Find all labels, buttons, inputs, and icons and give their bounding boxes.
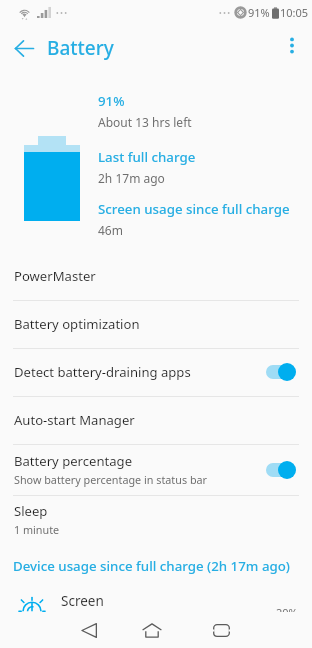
button[interactable]: Recent apps (205, 614, 237, 646)
button[interactable]: Screen (0, 587, 312, 615)
button[interactable]: Sleep (0, 495, 312, 543)
button[interactable]: Auto-start Manager (0, 396, 312, 444)
button[interactable]: Detect battery-draining apps (0, 348, 312, 396)
button[interactable]: PowerMaster (0, 252, 312, 300)
staticText: About 13 hrs left (98, 114, 192, 130)
staticText: 10:05 (280, 5, 309, 20)
staticText: 2h 17m ago (98, 170, 165, 186)
button[interactable]: Back (73, 614, 105, 646)
staticText: 46m (98, 222, 123, 238)
button[interactable]: More options (279, 32, 305, 58)
staticText: Screen usage since full charge (98, 200, 290, 218)
staticText: Battery optimization (14, 315, 140, 333)
staticText: 1 minute (14, 522, 60, 537)
button[interactable]: Home (136, 614, 168, 646)
staticText: Auto-start Manager (14, 411, 135, 429)
staticText: 91% (248, 5, 270, 20)
staticText: Last full charge (98, 148, 196, 166)
button[interactable]: Battery percentage (0, 444, 312, 495)
staticText: Battery (47, 35, 114, 61)
staticText: Detect battery-draining apps (14, 363, 191, 381)
staticText: Sleep (14, 502, 48, 520)
staticText: Screen (61, 592, 104, 610)
button[interactable]: Navigate up (7, 31, 41, 65)
staticText: PowerMaster (14, 267, 96, 285)
button[interactable]: Battery optimization (0, 300, 312, 348)
staticText: 20% (276, 605, 298, 620)
staticText: 91% (98, 92, 125, 110)
staticText: Show battery percentage in status bar (14, 472, 208, 487)
staticText: Device usage since full charge (2h 17m a… (13, 557, 290, 575)
staticText: Battery percentage (14, 452, 133, 470)
